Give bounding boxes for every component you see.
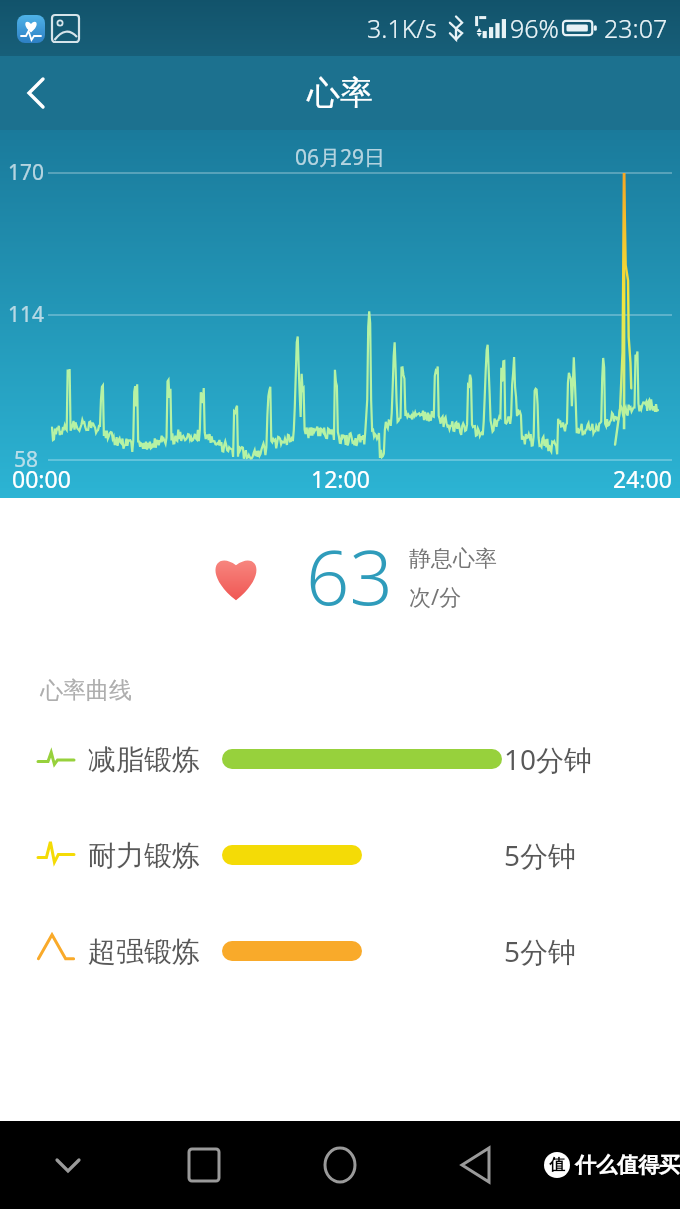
staticText: 3.1K/s	[367, 11, 437, 45]
staticText: 24:00	[613, 463, 672, 494]
button[interactable]: 超强锻炼	[0, 929, 680, 973]
staticText: 值	[549, 1155, 565, 1175]
staticText: 静息心率	[409, 545, 497, 573]
button[interactable]: Back	[0, 57, 72, 129]
staticText: 耐力锻炼	[88, 838, 200, 873]
staticText: 00:00	[12, 463, 71, 494]
button[interactable]: 耐力锻炼	[0, 833, 680, 877]
staticText: 10分钟	[504, 740, 593, 778]
staticText: 114	[8, 300, 45, 329]
staticText: 63	[306, 524, 393, 628]
staticText: 06月29日	[295, 143, 386, 172]
button[interactable]: Home	[272, 1121, 408, 1209]
staticText: 什么值得买	[575, 1152, 680, 1178]
staticText: 23:07	[604, 11, 668, 45]
staticText: 12:00	[311, 463, 370, 494]
button[interactable]: 减脂锻炼	[0, 737, 680, 781]
staticText: 96%	[510, 11, 559, 45]
button[interactable]: Back	[408, 1121, 544, 1209]
staticText: 减脂锻炼	[88, 742, 200, 777]
staticText: 心率曲线	[40, 676, 132, 705]
button[interactable]: Hide	[0, 1121, 136, 1209]
staticText: 心率	[307, 72, 373, 114]
staticText: 58	[14, 445, 39, 474]
staticText: 5分钟	[504, 932, 577, 970]
staticText: 次/分	[409, 581, 462, 611]
staticText: 超强锻炼	[88, 934, 200, 969]
button[interactable]: Recents	[136, 1121, 272, 1209]
staticText: 5分钟	[504, 836, 577, 874]
staticText: 170	[8, 158, 45, 187]
